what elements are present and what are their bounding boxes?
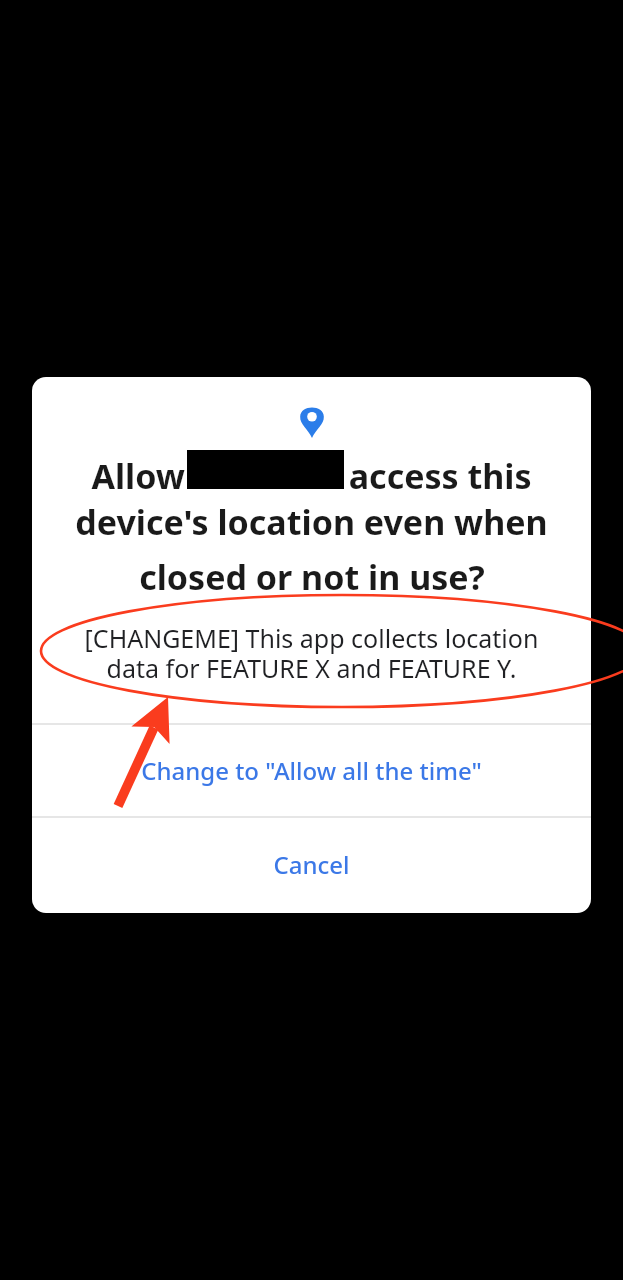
button[interactable]: Cancel [32,818,591,911]
staticText: device's location even when [75,499,548,545]
staticText: Allow to access this [91,453,532,499]
staticText: Change to "Allow all the time" [141,754,482,787]
other: Location [295,405,329,439]
staticText: [CHANGEME] This app collects location da… [72,621,551,686]
staticText: closed or not in use? [139,554,485,600]
button[interactable]: Change to "Allow all the time" [32,725,591,816]
staticText: Cancel [273,848,350,881]
